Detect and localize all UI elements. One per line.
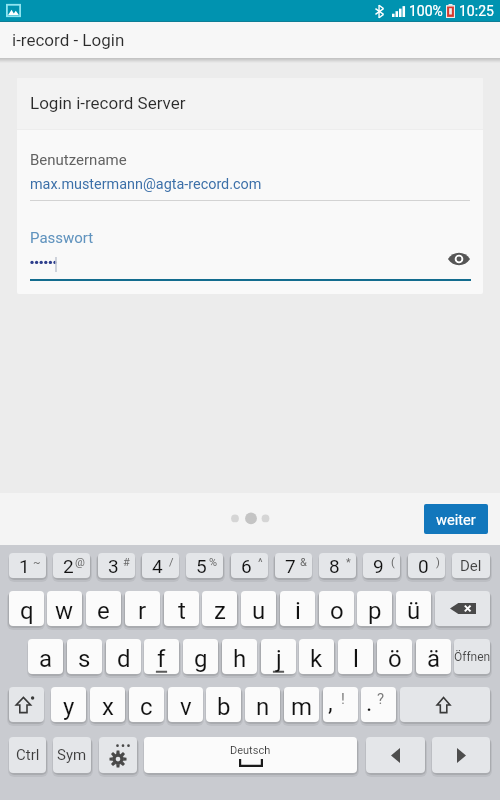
- staticText: o: [330, 597, 344, 625]
- button[interactable]: 5: [186, 553, 223, 578]
- button[interactable]: Backspace: [435, 591, 490, 626]
- staticText: a: [39, 645, 53, 673]
- staticText: 8: [329, 555, 340, 577]
- staticText: Del: [460, 557, 482, 575]
- staticText: /: [169, 556, 174, 569]
- button[interactable]: y: [51, 687, 86, 722]
- staticText: 100%: [409, 3, 443, 19]
- button[interactable]: h: [222, 639, 257, 674]
- staticText: Benutzername: [30, 151, 127, 169]
- button[interactable]: k: [299, 639, 334, 674]
- button[interactable]: 1: [9, 553, 46, 578]
- staticText: Sym: [57, 746, 87, 764]
- button[interactable]: Left: [366, 737, 425, 773]
- staticText: u: [252, 597, 266, 625]
- button[interactable]: ö: [377, 639, 412, 674]
- button[interactable]: Space: [144, 737, 357, 773]
- staticText: 6: [241, 555, 252, 577]
- staticText: &: [300, 556, 307, 569]
- staticText: #: [123, 556, 130, 569]
- button[interactable]: Show password: [446, 248, 472, 270]
- staticText: !: [341, 690, 345, 708]
- button[interactable]: p: [357, 591, 392, 626]
- staticText: (: [391, 556, 395, 569]
- button[interactable]: n: [245, 687, 280, 722]
- staticText: i-record - Login: [12, 30, 125, 50]
- button[interactable]: Right: [432, 737, 490, 773]
- staticText: weiter: [436, 511, 476, 528]
- button[interactable]: ü: [396, 591, 431, 626]
- button[interactable]: 3: [98, 553, 135, 578]
- button[interactable]: l: [338, 639, 373, 674]
- button[interactable]: m: [284, 687, 319, 722]
- button[interactable]: Settings: [99, 737, 137, 773]
- staticText: Öffnen: [454, 650, 490, 664]
- button[interactable]: q: [9, 591, 44, 626]
- button[interactable]: Shift: [9, 687, 44, 722]
- staticText: 5: [196, 555, 207, 577]
- button[interactable]: d: [106, 639, 141, 674]
- button[interactable]: weiter: [424, 504, 488, 534]
- button[interactable]: 8: [319, 553, 356, 578]
- button[interactable]: 7: [275, 553, 312, 578]
- staticText: Passwort: [30, 229, 94, 247]
- staticText: %: [209, 556, 218, 569]
- button[interactable]: Del: [452, 553, 490, 578]
- button[interactable]: b: [206, 687, 241, 722]
- button[interactable]: 6: [231, 553, 268, 578]
- staticText: ,: [328, 689, 333, 717]
- button[interactable]: 0: [408, 553, 445, 578]
- button[interactable]: Ctrl: [9, 737, 46, 773]
- staticText: g: [194, 645, 208, 673]
- staticText: i: [295, 597, 301, 625]
- button[interactable]: s: [67, 639, 102, 674]
- staticText: 2: [63, 555, 74, 577]
- button[interactable]: c: [129, 687, 164, 722]
- staticText: n: [256, 693, 270, 721]
- button[interactable]: e: [86, 591, 121, 626]
- staticText: s: [78, 645, 91, 673]
- staticText: e: [97, 597, 110, 625]
- button[interactable]: u: [241, 591, 276, 626]
- button[interactable]: 4: [142, 553, 179, 578]
- button[interactable]: t: [164, 591, 199, 626]
- button[interactable]: g: [183, 639, 218, 674]
- staticText: l: [353, 645, 359, 673]
- button[interactable]: x: [90, 687, 125, 722]
- button[interactable]: 2: [53, 553, 90, 578]
- button[interactable]: v: [168, 687, 203, 722]
- staticText: 10:25: [459, 3, 494, 19]
- staticText: ~: [33, 556, 41, 569]
- staticText: 4: [152, 555, 163, 577]
- staticText: c: [140, 693, 153, 721]
- button[interactable]: w: [47, 591, 82, 626]
- staticText: k: [310, 645, 323, 673]
- staticText: ?: [377, 690, 385, 708]
- staticText: 3: [108, 555, 119, 577]
- button[interactable]: Shift: [400, 687, 490, 722]
- staticText: p: [368, 597, 382, 625]
- staticText: r: [138, 597, 147, 625]
- button[interactable]: f: [144, 639, 179, 674]
- button[interactable]: z: [202, 591, 237, 626]
- button[interactable]: Sym: [53, 737, 91, 773]
- button[interactable]: a: [28, 639, 63, 674]
- button[interactable]: i: [280, 591, 315, 626]
- staticText: Ctrl: [16, 746, 40, 764]
- staticText: t: [178, 597, 186, 625]
- staticText: ^: [258, 556, 263, 569]
- button[interactable]: .: [361, 687, 396, 722]
- staticText: 1: [19, 555, 30, 577]
- staticText: 7: [285, 555, 296, 577]
- staticText: b: [217, 693, 231, 721]
- button[interactable]: r: [125, 591, 160, 626]
- button[interactable]: o: [319, 591, 354, 626]
- staticText: max.mustermann@agta-record.com: [30, 176, 262, 193]
- staticText: 9: [373, 555, 384, 577]
- button[interactable]: ,: [323, 687, 358, 722]
- button[interactable]: Öffnen: [454, 639, 490, 674]
- button[interactable]: 9: [363, 553, 400, 578]
- button[interactable]: ä: [416, 639, 451, 674]
- staticText: Deutsch: [230, 744, 271, 757]
- button[interactable]: j: [261, 639, 296, 674]
